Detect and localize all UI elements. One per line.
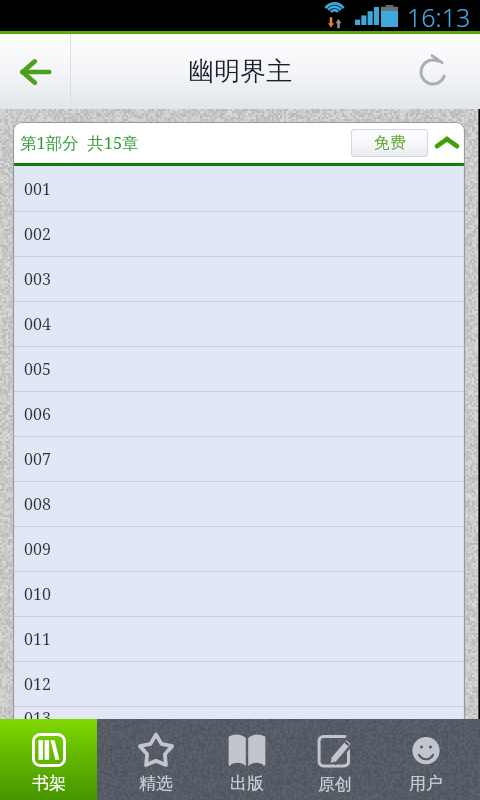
button[interactable]: 005	[13, 347, 465, 391]
staticText: 009	[24, 538, 51, 560]
button[interactable]: Back	[0, 34, 70, 109]
staticText: 出版	[230, 773, 264, 794]
button[interactable]: 004	[13, 302, 465, 346]
button[interactable]: Refresh	[386, 34, 480, 109]
button[interactable]: 原创	[289, 719, 380, 800]
staticText: 003	[24, 268, 51, 290]
staticText: 幽明界主	[188, 55, 292, 88]
button[interactable]: 012	[13, 662, 465, 706]
button[interactable]: 出版	[201, 719, 292, 800]
staticText: 精选	[139, 773, 173, 794]
staticText: 免费	[374, 133, 406, 153]
button[interactable]: 007	[13, 437, 465, 481]
staticText: 001	[24, 178, 51, 200]
staticText: 012	[24, 673, 51, 695]
staticText: 006	[24, 403, 51, 425]
button[interactable]: 010	[13, 572, 465, 616]
staticText: 原创	[318, 774, 352, 795]
staticText: 第1部分 共15章	[20, 131, 139, 154]
button[interactable]: 003	[13, 257, 465, 301]
button[interactable]: 008	[13, 482, 465, 526]
button[interactable]: 第1部分 共15章	[13, 122, 465, 166]
staticText: 书架	[32, 773, 66, 794]
staticText: 用户	[409, 773, 443, 794]
button[interactable]: 006	[13, 392, 465, 436]
button[interactable]: 009	[13, 527, 465, 571]
button[interactable]: 用户	[380, 719, 471, 800]
staticText: 011	[24, 628, 51, 650]
staticText: 002	[24, 223, 51, 245]
button[interactable]: 011	[13, 617, 465, 661]
staticText: 16:13	[407, 0, 471, 31]
staticText: 005	[24, 358, 51, 380]
button[interactable]: 001	[13, 166, 465, 211]
button[interactable]: 免费	[351, 129, 428, 157]
staticText: 004	[24, 313, 51, 335]
staticText: 007	[24, 448, 51, 470]
button[interactable]: 精选	[110, 719, 201, 800]
button[interactable]: 书架	[0, 719, 97, 800]
staticText: 010	[24, 583, 51, 605]
staticText: 013	[24, 707, 51, 719]
staticText: 008	[24, 493, 51, 515]
button[interactable]: 013	[13, 707, 465, 719]
button[interactable]: 002	[13, 212, 465, 256]
